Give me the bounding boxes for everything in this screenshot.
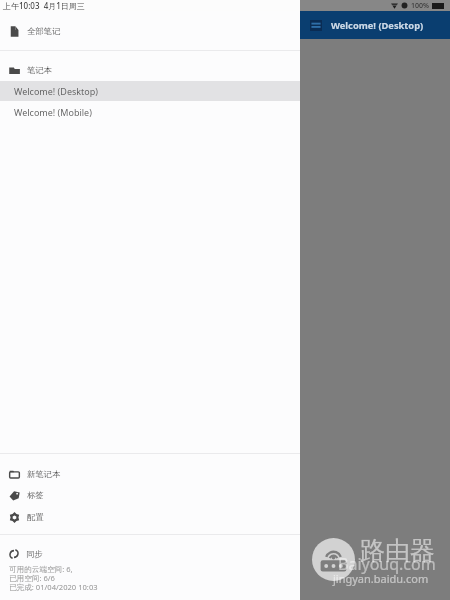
staticText: 已用空间: 6/6 bbox=[9, 573, 55, 583]
staticText: 路由器 bbox=[360, 535, 435, 566]
staticText: 已完成: 01/04/2020 10:03 bbox=[9, 582, 98, 592]
staticText: Welcome! (Desktop) bbox=[331, 19, 424, 32]
button[interactable]: Open navigation drawer bbox=[310, 20, 322, 31]
staticText: 100% bbox=[411, 1, 429, 11]
button[interactable]: 标签 bbox=[0, 485, 300, 505]
button[interactable]: 新笔记本 bbox=[0, 464, 300, 484]
button[interactable]: 同步 bbox=[0, 545, 300, 597]
staticText: 同步 bbox=[26, 549, 43, 559]
button[interactable]: 全部笔记 bbox=[0, 21, 300, 41]
button[interactable]: Close navigation drawer bbox=[300, 0, 450, 600]
staticText: 新笔记本 bbox=[27, 469, 61, 479]
staticText: 配置 bbox=[27, 512, 44, 522]
staticText: 全部笔记 bbox=[27, 26, 61, 36]
staticText: 标签 bbox=[27, 490, 44, 500]
staticText: Welcome! (Mobile) bbox=[14, 106, 92, 118]
staticText: Baiyouq.com bbox=[338, 553, 436, 575]
staticText: Welcome! (Desktop) bbox=[14, 85, 98, 97]
staticText: 上午10:03 4月1日周三 bbox=[3, 0, 85, 11]
staticText: 笔记本 bbox=[27, 65, 52, 75]
button[interactable]: Welcome! (Mobile) bbox=[0, 102, 300, 122]
button[interactable]: 笔记本 bbox=[0, 60, 300, 80]
staticText: jingyan.baidu.com bbox=[333, 571, 429, 586]
button[interactable]: 配置 bbox=[0, 507, 300, 527]
staticText: 可用的云端空间: 6, bbox=[9, 564, 73, 574]
button[interactable]: Welcome! (Desktop) bbox=[0, 81, 300, 101]
